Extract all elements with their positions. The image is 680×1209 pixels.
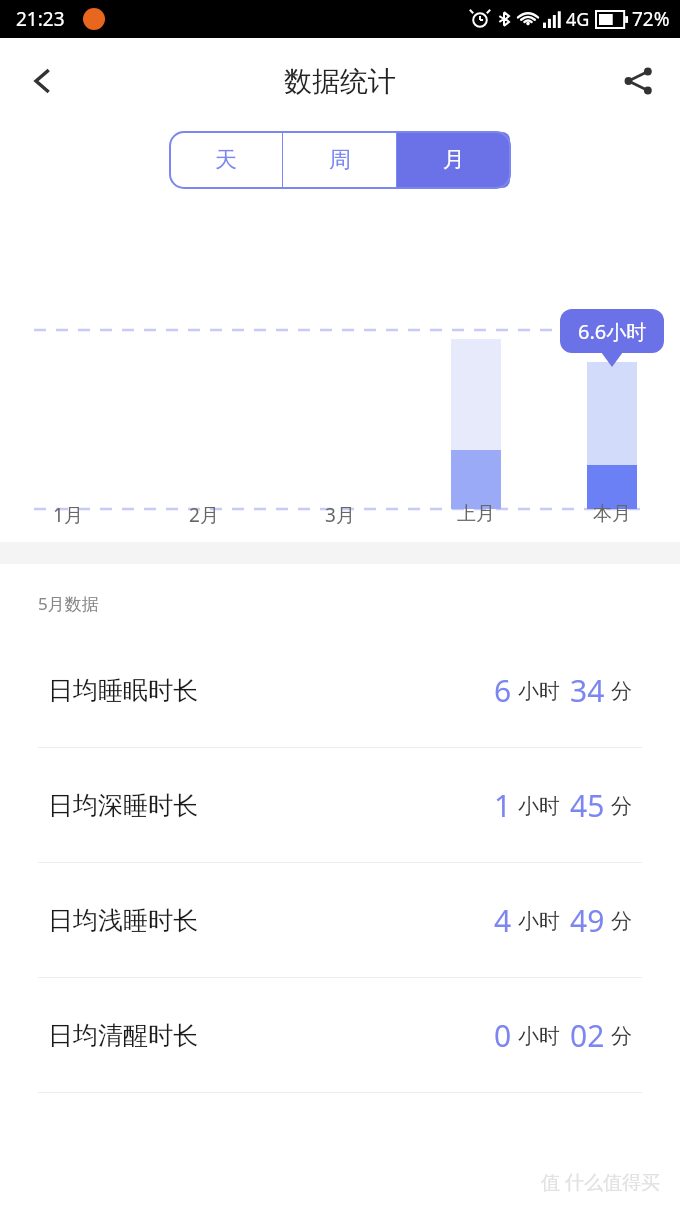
button[interactable]: Share (610, 53, 666, 109)
staticText: 周 (329, 146, 351, 174)
staticText: 45 (570, 785, 605, 826)
staticText: 49 (570, 900, 605, 941)
staticText: 小时 (518, 908, 560, 934)
staticText: 4 (494, 900, 512, 941)
staticText: 日均浅睡时长 (48, 905, 198, 936)
staticText: 72% (632, 6, 670, 32)
button[interactable]: 日均清醒时长 (0, 978, 680, 1092)
button[interactable]: 日均深睡时长 (0, 748, 680, 862)
staticText: 2月 (136, 502, 272, 528)
staticText: 3月 (272, 502, 408, 528)
staticText: 分 (611, 908, 632, 934)
staticText: 值 什么值得买 (541, 1169, 660, 1195)
staticText: 5月数据 (38, 592, 99, 615)
button[interactable]: 月 (397, 132, 510, 188)
staticText: 本月 (544, 502, 680, 526)
staticText: 1 (494, 785, 512, 826)
staticText: 小时 (518, 1023, 560, 1049)
button[interactable]: 日均睡眠时长 (0, 633, 680, 747)
staticText: 分 (611, 1023, 632, 1049)
staticText: 0 (494, 1015, 512, 1056)
staticText: 天 (215, 146, 237, 174)
staticText: 小时 (518, 793, 560, 819)
button[interactable]: 天 (170, 132, 282, 188)
staticText: 日均睡眠时长 (48, 675, 198, 706)
staticText: 月 (443, 146, 465, 174)
staticText: 日均清醒时长 (48, 1020, 198, 1051)
staticText: 1月 (0, 502, 136, 528)
staticText: 6 (494, 670, 512, 711)
staticText: 分 (611, 678, 632, 704)
staticText: 6.6小时 (578, 318, 647, 345)
button[interactable]: 日均浅睡时长 (0, 863, 680, 977)
staticText: 4G (566, 7, 590, 32)
staticText: 日均深睡时长 (48, 790, 198, 821)
staticText: 数据统计 (284, 64, 396, 99)
staticText: 上月 (408, 502, 544, 526)
button[interactable]: 周 (283, 132, 396, 188)
staticText: 34 (570, 670, 605, 711)
staticText: 02 (570, 1015, 605, 1056)
staticText: 21:23 (16, 6, 65, 32)
staticText: 分 (611, 793, 632, 819)
staticText: 小时 (518, 678, 560, 704)
button[interactable]: Back (14, 53, 70, 109)
